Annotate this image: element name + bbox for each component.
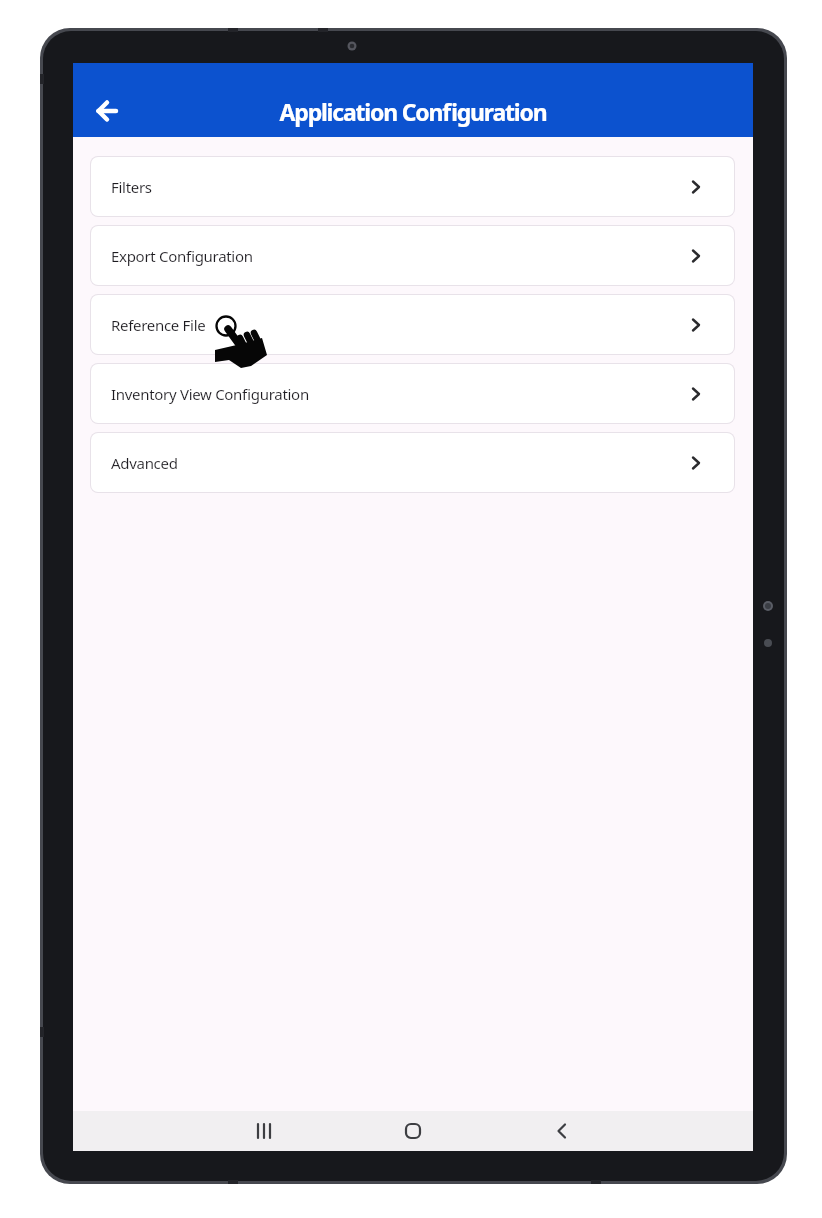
staticText: Advanced bbox=[111, 453, 178, 473]
button[interactable]: Inventory View Configuration bbox=[91, 364, 734, 423]
button[interactable] bbox=[244, 1111, 284, 1151]
button[interactable]: Reference File bbox=[91, 295, 734, 354]
button[interactable] bbox=[81, 85, 133, 137]
staticText: Reference File bbox=[111, 315, 206, 335]
button[interactable]: Export Configuration bbox=[91, 226, 734, 285]
button[interactable] bbox=[542, 1111, 582, 1151]
staticText: Inventory View Configuration bbox=[111, 384, 309, 404]
button[interactable] bbox=[393, 1111, 433, 1151]
staticText: Application Configuration bbox=[133, 96, 693, 127]
button[interactable]: Advanced bbox=[91, 433, 734, 492]
staticText: Export Configuration bbox=[111, 246, 253, 266]
button[interactable]: Filters bbox=[91, 157, 734, 216]
staticText: Filters bbox=[111, 177, 152, 197]
